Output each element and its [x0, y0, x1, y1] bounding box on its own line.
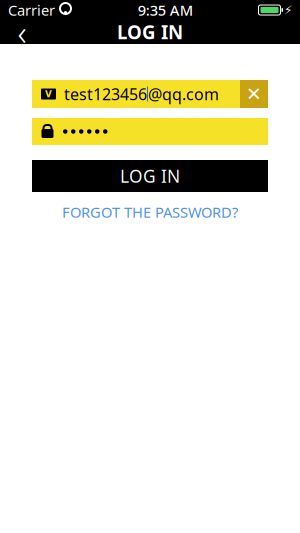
staticText: Carrier	[8, 0, 55, 20]
staticText: LOG IN	[120, 164, 180, 187]
staticText: v	[45, 84, 52, 100]
staticText: test123456	[64, 83, 147, 105]
button[interactable]: Clear email	[240, 80, 268, 108]
button[interactable]: FORGOT THE PASSWORD?	[62, 202, 238, 222]
staticText: 9:35 AM	[138, 0, 193, 20]
button[interactable]: LOG IN	[32, 160, 268, 192]
staticText: ⚡︎	[284, 3, 292, 17]
staticText: LOG IN	[117, 20, 183, 44]
staticText: ‹	[17, 9, 26, 55]
button[interactable]	[32, 118, 268, 145]
staticText: FORGOT THE PASSWORD?	[62, 202, 238, 222]
staticText: ✕	[246, 83, 262, 105]
button[interactable]: Back	[0, 20, 44, 44]
staticText: @qq.com	[148, 83, 219, 105]
